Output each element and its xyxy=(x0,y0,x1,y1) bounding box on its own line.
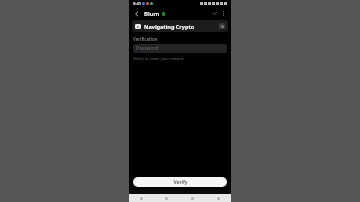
button[interactable]: More options xyxy=(219,9,228,18)
button[interactable]: Profile xyxy=(205,194,231,202)
staticText: Verify xyxy=(173,179,188,186)
staticText: Password xyxy=(136,45,159,52)
button[interactable]: Home xyxy=(129,194,154,202)
staticText: 9:41 xyxy=(133,1,141,6)
button[interactable]: Password xyxy=(133,44,227,53)
staticText: Blum xyxy=(144,10,160,18)
staticText: Navigating Crypto xyxy=(144,23,195,30)
button[interactable]: Navigating Crypto xyxy=(132,20,228,32)
button[interactable]: Verify xyxy=(133,177,227,187)
button[interactable]: Channel avatar xyxy=(219,23,225,29)
button[interactable]: Blum xyxy=(144,10,165,18)
staticText: Verification xyxy=(133,36,158,42)
button[interactable]: Search xyxy=(154,194,179,202)
staticText: Verify to claim your reward xyxy=(133,56,184,61)
button[interactable]: Wallet xyxy=(179,194,205,202)
button[interactable]: Back xyxy=(132,9,142,19)
button[interactable]: Expand xyxy=(210,9,219,18)
